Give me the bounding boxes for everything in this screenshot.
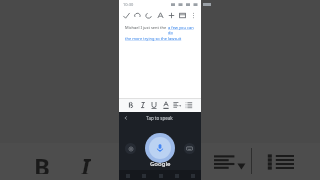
button[interactable]: More options: [189, 11, 198, 20]
staticText: the more trying so the lawsuit: [125, 36, 182, 41]
button[interactable]: Italic: [138, 100, 148, 110]
button[interactable]: Nav 0: [124, 172, 131, 179]
button[interactable]: Comment: [178, 11, 187, 20]
staticText: Michael I just sent the: [125, 25, 168, 30]
button[interactable]: Paragraph style: [214, 152, 244, 172]
button[interactable]: Format: [156, 11, 165, 20]
staticText: B: [34, 150, 50, 174]
button[interactable]: Bulleted list: [268, 152, 294, 172]
staticText: a few you can do: [168, 25, 195, 35]
button[interactable]: Done: [122, 11, 131, 20]
button[interactable]: Undo: [133, 11, 142, 20]
staticText: 10:30: [123, 2, 134, 7]
button[interactable]: Redo: [144, 11, 153, 20]
button[interactable]: Microphone: [145, 133, 175, 163]
button[interactable]: Nav 2: [157, 172, 164, 179]
button[interactable]: Bold: [30, 150, 54, 174]
button[interactable]: Back: [122, 114, 130, 122]
button[interactable]: Settings: [125, 143, 136, 154]
staticText: Google: [150, 160, 171, 168]
staticText: I: [81, 150, 91, 174]
button[interactable]: Italic: [74, 150, 98, 174]
button[interactable]: Text color: [161, 100, 171, 110]
button[interactable]: Underline: [149, 100, 159, 110]
button[interactable]: Bold: [126, 100, 136, 110]
staticText: Tap to speak: [146, 115, 173, 121]
button[interactable]: Nav 1: [140, 172, 147, 179]
button[interactable]: Keyboard: [184, 143, 195, 154]
button[interactable]: Paragraph style: [172, 100, 182, 110]
button[interactable]: Nav 4: [189, 172, 196, 179]
button[interactable]: Insert: [167, 11, 176, 20]
button[interactable]: Nav 3: [173, 172, 180, 179]
button[interactable]: Bulleted list: [184, 100, 194, 110]
